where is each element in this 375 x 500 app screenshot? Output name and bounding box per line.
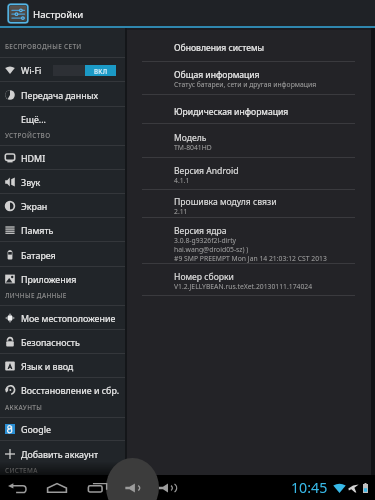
staticText: Номер сборки [174, 271, 234, 283]
staticText: V1.2.JELLYBEAN.rus.teXet.20130111.174024 [174, 282, 313, 291]
staticText: АККАУНТЫ [5, 403, 43, 411]
button[interactable]: Язык и ввод [0, 354, 125, 378]
button[interactable]: Прошивка модуля связи [127, 189, 375, 218]
staticText: Мое местоположение [21, 312, 116, 324]
staticText: Добавить аккаунт [21, 448, 99, 460]
staticText: Безопасность [21, 336, 80, 348]
button[interactable]: Home [47, 475, 67, 500]
staticText: Прошивка модуля связи [174, 196, 277, 208]
staticText: #9 SMP PREEMPT Mon Jan 14 21:03:12 CST 2… [174, 254, 327, 263]
button[interactable]: Юридическая информация [127, 94, 375, 124]
staticText: УСТРОЙСТВО [5, 131, 51, 139]
staticText: Батарея [21, 249, 56, 261]
button[interactable]: Wi-Fi [0, 58, 125, 82]
button[interactable]: Обновления системы [127, 28, 375, 62]
button[interactable]: Мое местоположение [0, 306, 125, 330]
button[interactable]: Приложения [0, 267, 125, 291]
button[interactable]: Версия ядра [127, 218, 375, 264]
staticText: Звук [21, 176, 41, 188]
button[interactable]: Volume up [158, 475, 178, 500]
staticText: 10:45 [291, 478, 328, 497]
staticText: Версия Android [174, 165, 239, 177]
staticText: Приложения [21, 273, 77, 285]
button[interactable]: Настройки [7, 0, 84, 28]
button[interactable]: Батарея [0, 243, 125, 267]
button[interactable]: Google [0, 417, 125, 441]
button[interactable]: Volume down [123, 475, 143, 500]
staticText: СИСТЕМА [5, 466, 38, 474]
staticText: Общая информация [174, 69, 260, 81]
button[interactable]: Передача данных [0, 83, 125, 107]
staticText: TM-8041HD [174, 143, 212, 152]
button[interactable]: Версия Android [127, 158, 375, 190]
staticText: Настройки [33, 8, 84, 21]
staticText: 3.0.8-g9326f2l-dirty [174, 236, 237, 245]
staticText: Передача данных [21, 89, 99, 101]
button[interactable]: Модель [127, 125, 375, 158]
staticText: 4.1.1 [174, 176, 190, 185]
button[interactable]: Back [7, 475, 27, 500]
button[interactable]: Recent apps [87, 475, 107, 500]
button[interactable]: Память [0, 218, 125, 242]
button[interactable]: Безопасность [0, 330, 125, 354]
button[interactable]: Номер сборки [127, 264, 375, 296]
button[interactable]: Восстановление и сбр. [0, 378, 125, 402]
staticText: Статус батареи, сети и другая информация [174, 80, 317, 89]
button[interactable]: Экран [0, 194, 125, 218]
button[interactable]: Ещё... [0, 107, 125, 131]
staticText: Язык и ввод [21, 360, 74, 372]
staticText: Модель [174, 132, 207, 144]
staticText: Память [21, 224, 54, 236]
staticText: Wi-Fi [21, 64, 42, 76]
staticText: Версия ядра [174, 225, 227, 237]
button[interactable]: Wi-Fi on [53, 65, 116, 76]
staticText: Ещё... [21, 113, 46, 125]
staticText: hai.wang@droid05-sz) ) [174, 245, 249, 254]
staticText: Обновления системы [174, 42, 265, 54]
staticText: Google [21, 423, 52, 435]
staticText: Юридическая информация [174, 106, 289, 118]
button[interactable]: Добавить аккаунт [0, 442, 125, 466]
button[interactable]: Общая информация [127, 62, 375, 95]
staticText: 2.11 [174, 207, 188, 216]
staticText: ЛИЧНЫЕ ДАННЫЕ [5, 291, 67, 299]
staticText: HDMI [21, 152, 46, 164]
staticText: Экран [21, 200, 48, 212]
staticText: БЕСПРОВОДНЫЕ СЕТИ [5, 42, 82, 51]
button[interactable]: HDMI [0, 146, 125, 170]
staticText: Восстановление и сбр. [21, 384, 120, 396]
staticText: ВКЛ [94, 67, 108, 75]
button[interactable]: Звук [0, 170, 125, 194]
